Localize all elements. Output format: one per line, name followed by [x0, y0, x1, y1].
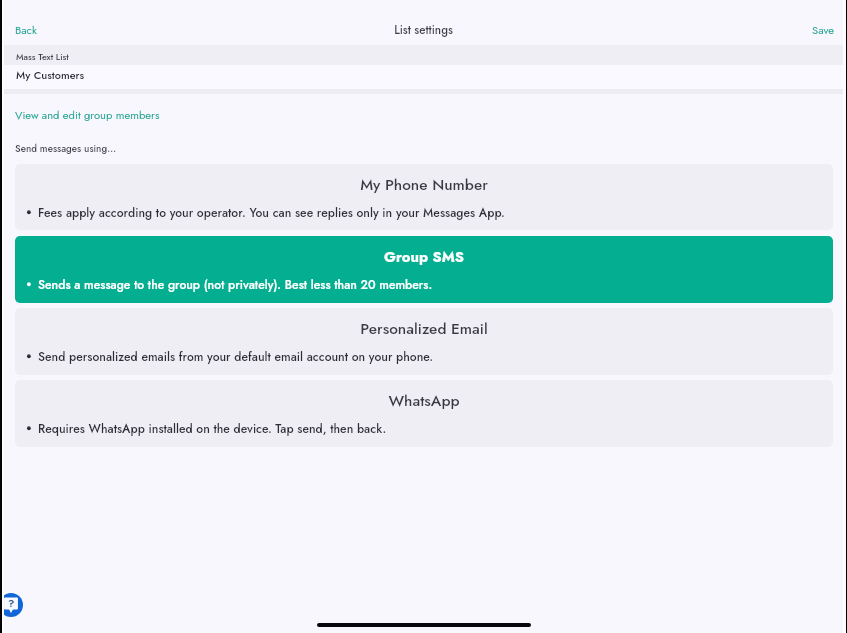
- staticText: My Phone Number: [15, 174, 833, 196]
- button[interactable]: Save: [812, 22, 834, 38]
- staticText: Requires WhatsApp installed on the devic…: [38, 420, 387, 438]
- button[interactable]: My Phone Number: [15, 164, 833, 230]
- staticText: Sends a message to the group (not privat…: [38, 276, 433, 294]
- staticText: ?: [8, 596, 15, 611]
- staticText: WhatsApp: [15, 390, 833, 412]
- staticText: List settings: [0, 22, 847, 39]
- button[interactable]: View and edit group members: [15, 107, 160, 123]
- button[interactable]: WhatsApp: [15, 380, 833, 447]
- staticText: Group SMS: [15, 246, 833, 267]
- staticText: Fees apply according to your operator. Y…: [38, 204, 505, 222]
- staticText: Send personalized emails from your defau…: [38, 348, 434, 366]
- button[interactable]: Help: [0, 593, 23, 617]
- button[interactable]: Personalized Email: [15, 308, 833, 375]
- staticText: My Customers: [16, 67, 85, 83]
- button[interactable]: Group SMS: [15, 236, 833, 303]
- staticText: Save: [812, 22, 834, 38]
- staticText: View and edit group members: [15, 107, 160, 123]
- button[interactable]: Back: [15, 22, 37, 38]
- staticText: Personalized Email: [15, 318, 833, 340]
- staticText: Mass Text List: [16, 50, 69, 63]
- staticText: Send messages using…: [15, 142, 117, 156]
- button[interactable]: My Customers: [0, 65, 847, 89]
- staticText: Back: [15, 22, 37, 38]
